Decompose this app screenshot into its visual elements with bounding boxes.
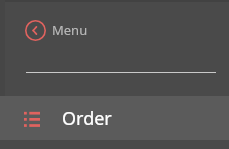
button[interactable]: Back xyxy=(0,0,229,72)
staticText: Order xyxy=(62,106,112,131)
other: Order list xyxy=(24,110,40,126)
button[interactable]: Order list xyxy=(0,96,229,140)
staticText: Menu xyxy=(52,21,88,39)
button[interactable]: Back xyxy=(25,20,46,41)
